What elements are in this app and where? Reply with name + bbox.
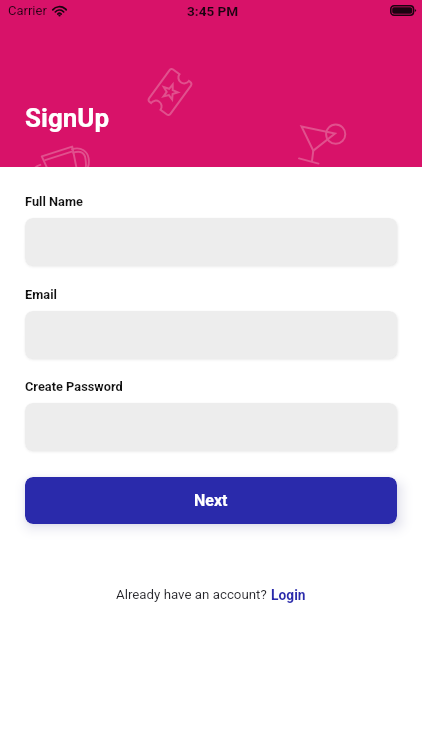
staticText: Full Name [25,194,83,209]
staticText: Carrier [8,3,47,18]
button[interactable]: Next [25,477,397,524]
staticText: 3:45 PM [187,3,239,19]
staticText: Create Password [25,379,123,394]
staticText: SignUp [25,103,110,133]
staticText: Email [25,287,57,302]
staticText: Login [271,587,306,603]
staticText: Next [194,491,228,510]
staticText: Already have an account? [116,587,271,603]
button[interactable]: Login [271,587,306,603]
